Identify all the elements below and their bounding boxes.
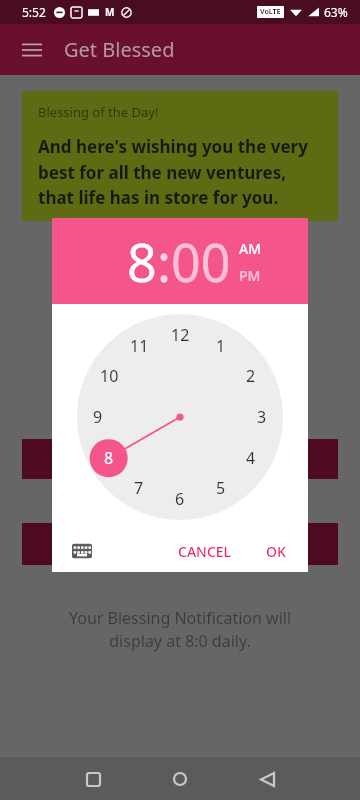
button[interactable]: Blessing of the Day!: [22, 91, 338, 221]
button[interactable]: PM: [239, 266, 261, 285]
button[interactable]: 1: [77, 314, 283, 520]
staticText: 63%: [324, 4, 348, 20]
staticText: 9: [93, 406, 103, 428]
staticText: Get Blessed: [64, 36, 175, 63]
button[interactable]: Home: [163, 762, 197, 796]
button[interactable]: [22, 523, 338, 565]
button[interactable]: OK: [258, 536, 294, 567]
staticText: M: [105, 5, 115, 19]
button[interactable]: Open navigation menu: [10, 28, 54, 72]
staticText: 6: [175, 488, 185, 510]
button[interactable]: Recent apps: [76, 762, 110, 796]
staticText: 1: [216, 335, 226, 357]
button[interactable]: AM: [239, 239, 262, 258]
button[interactable]: [22, 439, 338, 479]
staticText: 4: [246, 447, 256, 469]
button[interactable]: 8: [127, 226, 157, 297]
staticText: 7: [134, 477, 144, 499]
staticText: 3: [257, 406, 267, 428]
staticText: OK: [266, 542, 286, 561]
staticText: :: [157, 226, 171, 297]
staticText: 2: [246, 365, 256, 387]
button[interactable]: Switch to keyboard input: [66, 535, 98, 567]
button[interactable]: CANCEL: [170, 536, 240, 567]
staticText: Blessing of the Day!: [38, 103, 159, 121]
staticText: VoLTE: [260, 7, 281, 17]
button[interactable]: Back: [250, 762, 284, 796]
staticText: And here's wishing you the very best for…: [38, 135, 322, 209]
staticText: CANCEL: [178, 542, 232, 561]
staticText: 10: [100, 365, 119, 387]
staticText: 5: [216, 477, 226, 499]
staticText: 8: [104, 447, 114, 469]
staticText: Your Blessing Notification will display …: [48, 607, 312, 652]
staticText: 11: [130, 335, 149, 357]
button[interactable]: 00: [171, 226, 231, 297]
staticText: 5:52: [22, 4, 46, 20]
staticText: 12: [171, 324, 190, 346]
